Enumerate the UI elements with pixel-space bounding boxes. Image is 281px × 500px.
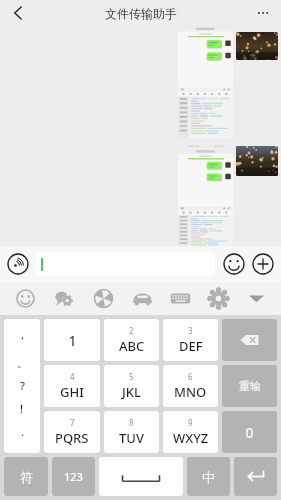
button[interactable]: Hide keyboard bbox=[237, 282, 275, 315]
staticText: 123 bbox=[64, 469, 83, 484]
button[interactable]: Chat settings bbox=[45, 282, 84, 315]
button[interactable]: More bbox=[251, 1, 275, 25]
staticText: . bbox=[21, 424, 24, 439]
button[interactable]: 3 DEF bbox=[163, 319, 218, 361]
button[interactable]: Emoji panel bbox=[6, 282, 45, 315]
staticText: 4 bbox=[70, 371, 75, 382]
button[interactable]: Screenshot bbox=[178, 26, 233, 138]
button[interactable]: Car mode bbox=[123, 282, 161, 315]
staticText: DEF bbox=[179, 337, 203, 355]
button[interactable]: 6 MNO bbox=[163, 365, 218, 407]
button[interactable]: 8 TUV bbox=[104, 411, 159, 453]
staticText: 符 bbox=[20, 469, 33, 485]
staticText: 文件传输助手 bbox=[105, 6, 177, 21]
button[interactable]: Enter bbox=[234, 457, 277, 496]
button[interactable]: 中 bbox=[187, 457, 230, 496]
button[interactable]: Emoji bbox=[223, 253, 245, 275]
button[interactable]: del bbox=[222, 319, 277, 361]
button[interactable]: 2 ABC bbox=[104, 319, 159, 361]
button[interactable]: Space bbox=[99, 457, 183, 496]
staticText: ! bbox=[20, 401, 24, 416]
staticText: WXYZ bbox=[173, 429, 209, 447]
button[interactable]: Photo bbox=[236, 146, 278, 176]
staticText: 8 bbox=[129, 417, 134, 428]
staticText: 3 bbox=[188, 325, 193, 336]
button[interactable]: Settings bbox=[199, 282, 237, 315]
staticText: 0 bbox=[245, 423, 254, 442]
button[interactable] bbox=[36, 252, 215, 276]
button[interactable]: 9 WXYZ bbox=[163, 411, 218, 453]
button[interactable]: Screenshot bbox=[178, 144, 233, 249]
button[interactable]: 符 bbox=[4, 457, 48, 496]
button[interactable]: 7 PQRS bbox=[44, 411, 100, 453]
button[interactable]: Back bbox=[6, 1, 30, 25]
staticText: ABC bbox=[119, 337, 145, 355]
staticText: MNO bbox=[174, 383, 207, 401]
staticText: 7 bbox=[70, 417, 75, 428]
button[interactable]: 5 JKL bbox=[104, 365, 159, 407]
staticText: 2 bbox=[129, 325, 134, 336]
staticText: 中 bbox=[202, 469, 215, 485]
staticText: 6 bbox=[188, 371, 193, 382]
staticText: 5 bbox=[129, 371, 134, 382]
staticText: TUV bbox=[119, 429, 144, 447]
button[interactable]: Voice input bbox=[7, 253, 29, 275]
staticText: ? bbox=[20, 378, 25, 393]
staticText: 。 bbox=[17, 356, 28, 370]
staticText: PQRS bbox=[55, 429, 89, 447]
button[interactable]: Punctuation bbox=[4, 319, 40, 453]
staticText: 重输 bbox=[239, 379, 261, 393]
button[interactable]: Camera bbox=[84, 282, 123, 315]
button[interactable]: Keyboard bbox=[161, 282, 199, 315]
button[interactable]: 1 bbox=[44, 319, 100, 361]
staticText: GHI bbox=[60, 383, 84, 401]
staticText: JKL bbox=[122, 383, 141, 401]
staticText: 1 bbox=[68, 331, 77, 350]
button[interactable]: More functions bbox=[252, 253, 274, 275]
button[interactable]: 123 bbox=[52, 457, 95, 496]
staticText: 9 bbox=[188, 417, 193, 428]
button[interactable]: Photo bbox=[236, 32, 278, 60]
button[interactable]: 4 GHI bbox=[44, 365, 100, 407]
staticText: ' bbox=[21, 333, 24, 348]
button[interactable]: 重输 bbox=[222, 365, 277, 407]
button[interactable]: 0 bbox=[222, 411, 277, 453]
